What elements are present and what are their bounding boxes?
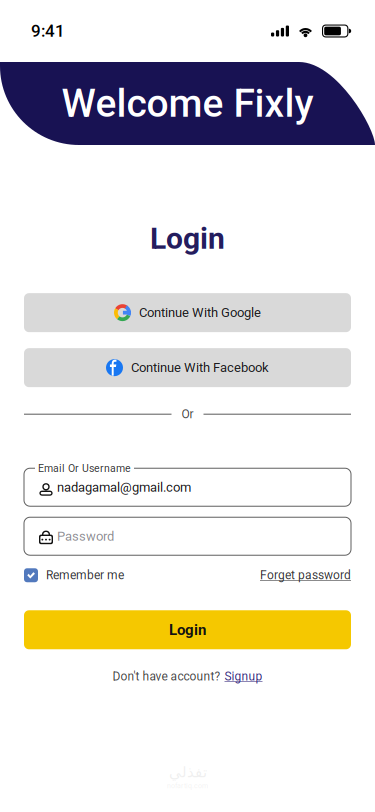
- staticText: Login: [169, 621, 206, 639]
- button[interactable]: Login: [24, 610, 351, 649]
- button[interactable]: Remember me: [24, 568, 124, 582]
- staticText: Forget password: [260, 568, 351, 582]
- staticText: Continue With Facebook: [131, 360, 269, 375]
- staticText: Remember me: [46, 568, 124, 582]
- staticText: 9:41: [31, 21, 65, 41]
- button[interactable]: Signup: [224, 669, 262, 683]
- staticText: nofartiq.com: [167, 782, 208, 790]
- button[interactable]: Forget password: [260, 568, 351, 582]
- staticText: تفذلي: [168, 763, 206, 781]
- staticText: Email Or Username: [38, 462, 131, 474]
- staticText: Continue With Google: [139, 305, 261, 320]
- staticText: Login: [150, 221, 225, 256]
- button[interactable]: Continue With Google: [24, 293, 351, 332]
- staticText: Don't have account?: [112, 669, 220, 683]
- staticText: nadagamal@gmail.com: [57, 480, 191, 495]
- staticText: Or: [181, 407, 193, 421]
- staticText: Welcome Fixly: [61, 81, 313, 126]
- staticText: Password: [57, 529, 114, 544]
- staticText: Signup: [224, 669, 262, 683]
- button[interactable]: Continue With Facebook: [24, 348, 351, 387]
